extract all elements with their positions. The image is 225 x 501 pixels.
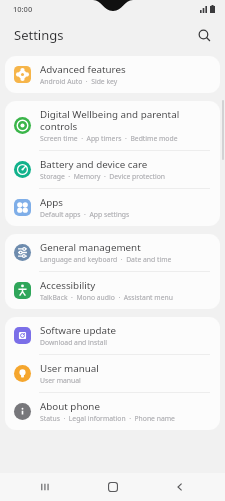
button[interactable]: General management [5,234,220,271]
staticText: User manual [40,376,81,385]
staticText: Language and keyboard · Date and time [40,255,172,264]
staticText: Storage · Memory · Device protection [40,172,166,181]
button[interactable]: Apps [5,189,220,226]
button[interactable]: User manual [5,355,220,392]
staticText: Download and install [40,338,108,347]
button[interactable]: Digital Wellbeing and parental controls [5,101,220,150]
staticText: Software update [40,324,116,337]
staticText: TalkBack · Mono audio · Assistant menu [40,293,173,302]
staticText: Accessibility [40,279,96,292]
button[interactable]: Advanced features [5,56,220,93]
staticText: Advanced features [40,63,126,76]
staticText: General management [40,241,141,254]
staticText: Android Auto · Side key [40,77,118,86]
staticText: Settings [14,26,64,44]
staticText: About phone [40,400,100,413]
button[interactable]: Recents [23,473,67,501]
staticText: 10:00 [13,4,33,14]
button[interactable]: Accessibility [5,272,220,309]
button[interactable]: About phone [5,393,220,430]
button[interactable]: Back [158,473,202,501]
staticText: Default apps · App settings [40,210,130,219]
button[interactable]: Battery and device care [5,151,220,188]
staticText: User manual [40,362,99,375]
button[interactable]: Home [91,473,135,501]
staticText: Digital Wellbeing and parental controls [40,108,180,133]
staticText: Apps [40,196,64,209]
button[interactable]: Software update [5,317,220,354]
staticText: Battery and device care [40,158,148,171]
staticText: Status · Legal information · Phone name [40,414,175,423]
staticText: Screen time · App timers · Bedtime mode [40,134,178,143]
button[interactable]: Search [191,22,217,48]
